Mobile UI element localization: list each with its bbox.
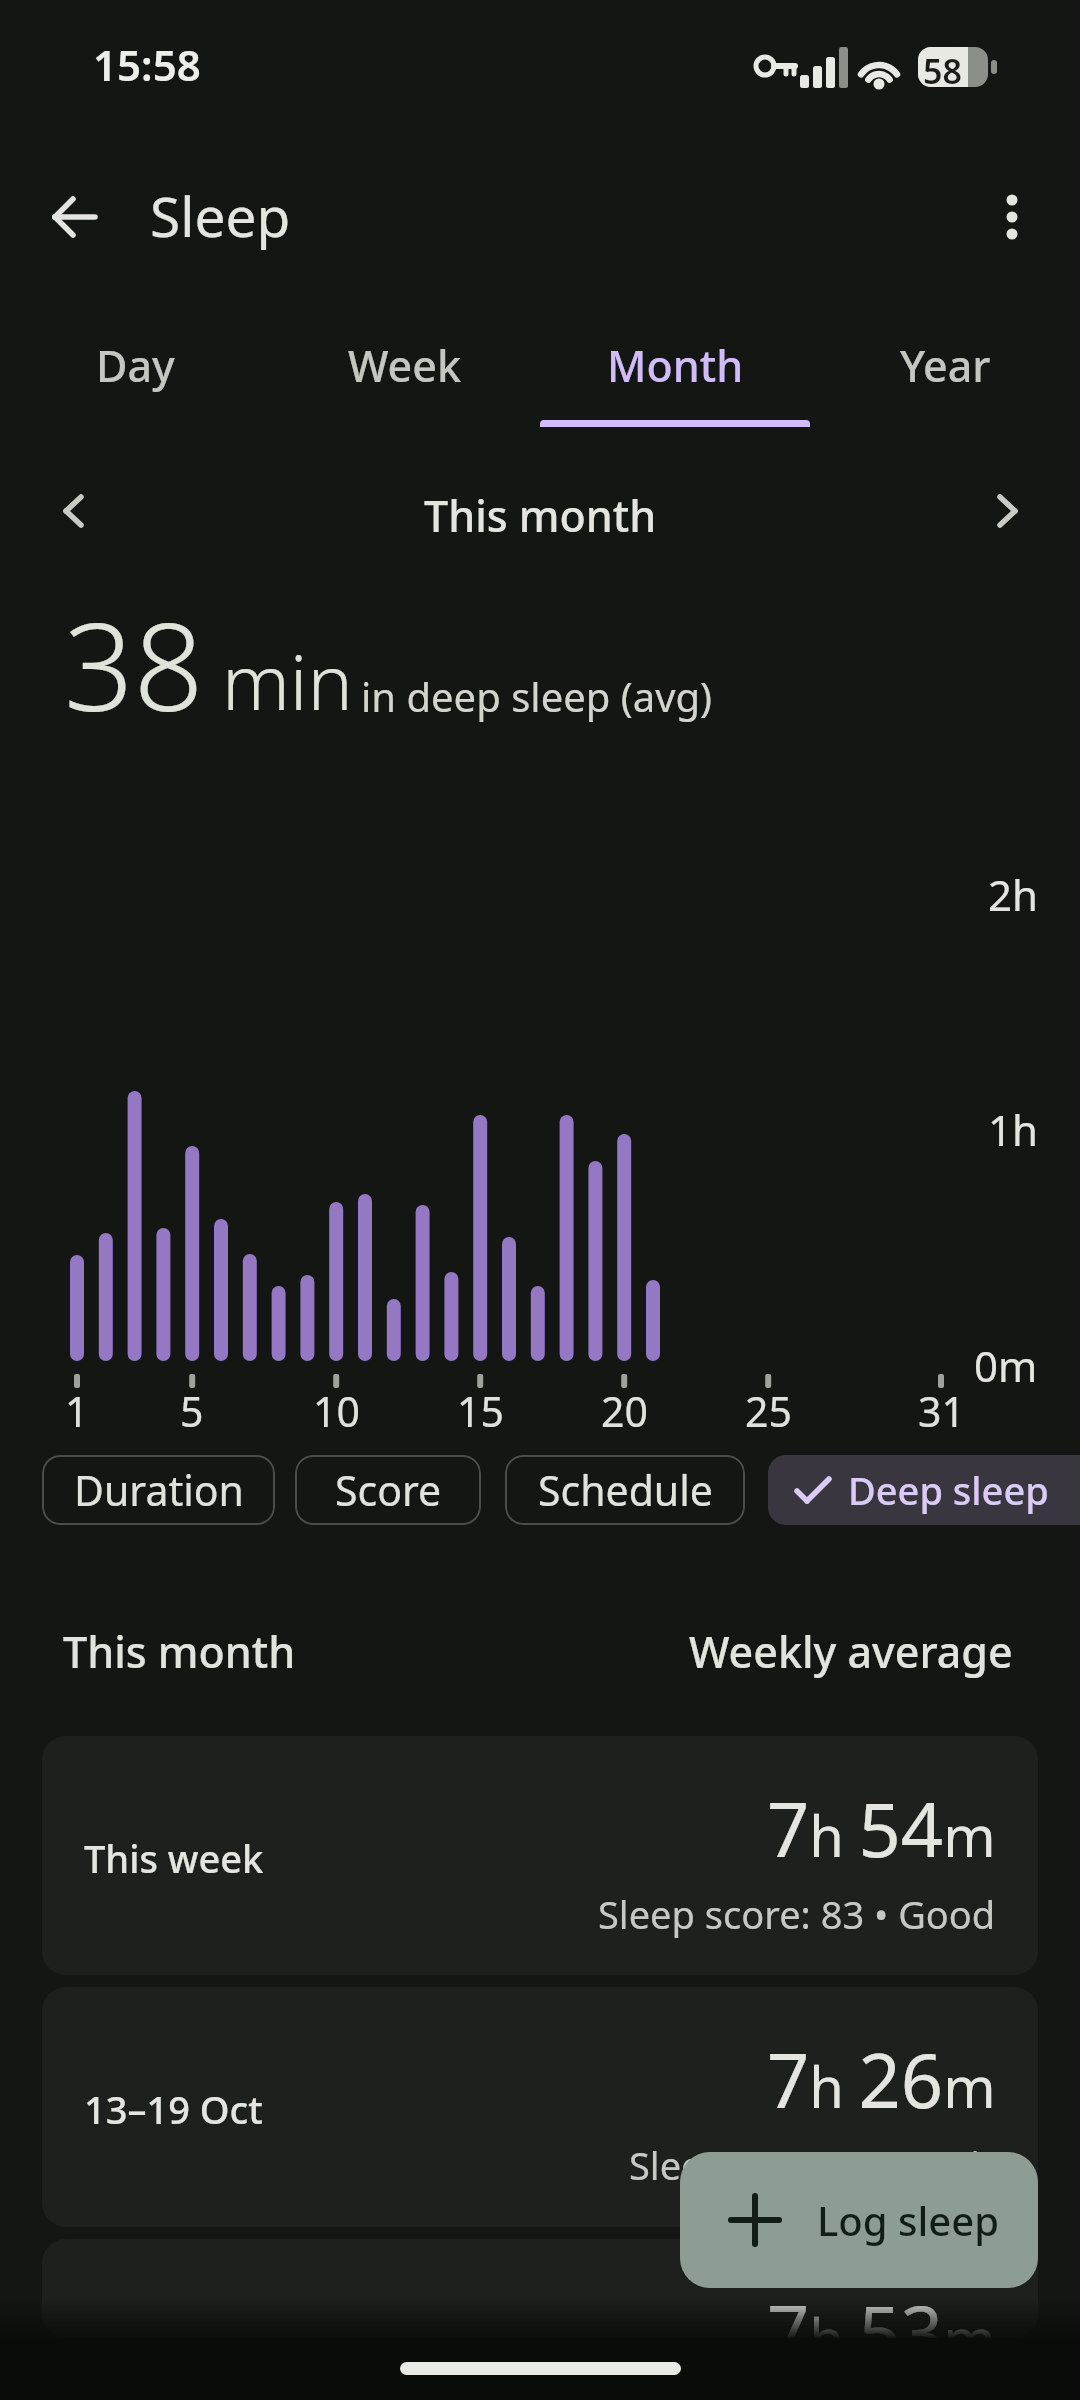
- button[interactable]: Week: [270, 320, 540, 410]
- staticText: 38: [64, 581, 204, 747]
- staticText: Year: [900, 336, 991, 395]
- button[interactable]: Day: [0, 320, 270, 410]
- staticText: Weekly average: [689, 1622, 1013, 1681]
- staticText: 20: [601, 1383, 648, 1439]
- staticText: 10: [313, 1383, 360, 1439]
- staticText: Score: [335, 1462, 442, 1518]
- staticText: Log sleep: [817, 2193, 999, 2247]
- staticText: Schedule: [538, 1462, 713, 1518]
- staticText: Sleep: [150, 178, 291, 253]
- button[interactable]: 7h 53m: [42, 2239, 1038, 2338]
- button[interactable]: This week: [42, 1736, 1038, 1975]
- staticText: 58: [923, 48, 962, 94]
- button[interactable]: Duration: [42, 1455, 275, 1525]
- button[interactable]: Year: [810, 320, 1080, 410]
- button[interactable]: Deep sleep: [768, 1455, 1080, 1525]
- staticText: in deep sleep (avg): [361, 669, 713, 723]
- staticText: 7h 53m: [767, 2281, 996, 2338]
- button[interactable]: [30, 172, 120, 262]
- staticText: Month: [607, 336, 744, 395]
- staticText: This week: [84, 1832, 264, 1884]
- staticText: 25: [745, 1383, 792, 1439]
- button[interactable]: [967, 172, 1057, 262]
- staticText: Deep sleep: [848, 1464, 1049, 1516]
- staticText: 7h 26m: [767, 2029, 996, 2130]
- staticText: Sleep score: 83 • Good: [598, 1888, 996, 1940]
- staticText: This month: [63, 1622, 296, 1681]
- staticText: 7h 54m: [767, 1778, 996, 1879]
- staticText: 31: [918, 1383, 965, 1439]
- staticText: Day: [96, 336, 175, 395]
- staticText: 13–19 Oct: [84, 2083, 263, 2135]
- staticText: Duration: [74, 1462, 244, 1518]
- staticText: 15: [457, 1383, 504, 1439]
- staticText: min: [222, 629, 353, 733]
- button[interactable]: Month: [540, 320, 810, 410]
- button[interactable]: Log sleep: [680, 2152, 1038, 2288]
- staticText: 1h: [988, 1101, 1038, 1158]
- staticText: This month: [424, 486, 657, 545]
- staticText: 15:58: [93, 36, 201, 93]
- staticText: Sleep score: 79 • Fair: [629, 2139, 996, 2191]
- staticText: 2h: [988, 866, 1038, 923]
- button[interactable]: Score: [295, 1455, 481, 1525]
- button[interactable]: 13–19 Oct: [42, 1987, 1038, 2227]
- staticText: Week: [348, 336, 462, 395]
- staticText: 0m: [974, 1337, 1038, 1394]
- staticText: 1: [65, 1383, 89, 1439]
- button[interactable]: [964, 468, 1050, 554]
- button[interactable]: [30, 468, 116, 554]
- staticText: 5: [180, 1383, 204, 1439]
- button[interactable]: Schedule: [505, 1455, 745, 1525]
